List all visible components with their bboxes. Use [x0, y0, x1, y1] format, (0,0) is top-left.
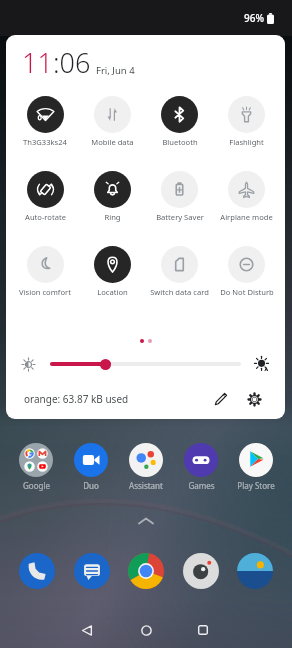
- button[interactable]: Do Not Disturb: [213, 246, 280, 297]
- staticText: Google: [23, 480, 50, 491]
- button[interactable]: Flashlight: [213, 96, 280, 147]
- button[interactable]: Airplane mode: [213, 171, 280, 222]
- staticText: :06: [53, 44, 91, 81]
- button[interactable]: Assistant: [121, 443, 171, 491]
- button[interactable]: Battery Saver: [146, 171, 213, 222]
- button[interactable]: Phone: [19, 553, 55, 589]
- button[interactable]: Edit tiles: [212, 390, 230, 408]
- staticText: Location: [97, 287, 128, 297]
- button[interactable]: Mobile data: [79, 96, 146, 147]
- button[interactable]: Play Store: [231, 443, 281, 491]
- staticText: 11: [22, 44, 53, 81]
- staticText: Games: [188, 480, 215, 491]
- button[interactable]: Messages: [74, 553, 110, 589]
- staticText: Switch data card: [150, 287, 209, 297]
- staticText: Fri, Jun 4: [96, 64, 135, 77]
- button[interactable]: Back: [67, 612, 107, 648]
- button[interactable]: Home: [126, 612, 166, 648]
- button[interactable]: Recents: [183, 612, 223, 648]
- staticText: Play Store: [237, 480, 275, 491]
- button[interactable]: Auto-rotate: [11, 171, 79, 222]
- button[interactable]: Location: [79, 246, 146, 297]
- staticText: orange: 63.87 kB used: [24, 392, 129, 406]
- staticText: Battery Saver: [156, 212, 204, 222]
- button[interactable]: Settings: [245, 390, 263, 408]
- button[interactable]: Games: [176, 443, 226, 491]
- button[interactable]: Bluetooth: [146, 96, 213, 147]
- staticText: Auto-rotate: [25, 212, 66, 222]
- staticText: Airplane mode: [220, 212, 273, 222]
- staticText: Ring: [104, 212, 121, 222]
- button[interactable]: Photos: [237, 553, 273, 589]
- button[interactable]: Google: [11, 443, 61, 491]
- button[interactable]: Duo: [66, 443, 116, 491]
- staticText: Flashlight: [229, 137, 264, 147]
- button[interactable]: Chrome: [128, 553, 164, 589]
- button[interactable]: Camera: [183, 553, 219, 589]
- button[interactable]: Brightness: [50, 356, 241, 372]
- staticText: Mobile data: [91, 137, 134, 147]
- button[interactable]: Th3G33ks24: [11, 96, 79, 147]
- staticText: Assistant: [129, 480, 163, 491]
- staticText: 96%: [244, 11, 264, 25]
- button[interactable]: Switch data card: [146, 246, 213, 297]
- staticText: Bluetooth: [162, 137, 198, 147]
- staticText: Duo: [83, 480, 99, 491]
- staticText: Do Not Disturb: [220, 287, 274, 297]
- button[interactable]: Ring: [79, 171, 146, 222]
- staticText: Vision comfort: [19, 287, 71, 297]
- button[interactable]: Vision comfort: [11, 246, 79, 297]
- staticText: Th3G33ks24: [23, 137, 67, 147]
